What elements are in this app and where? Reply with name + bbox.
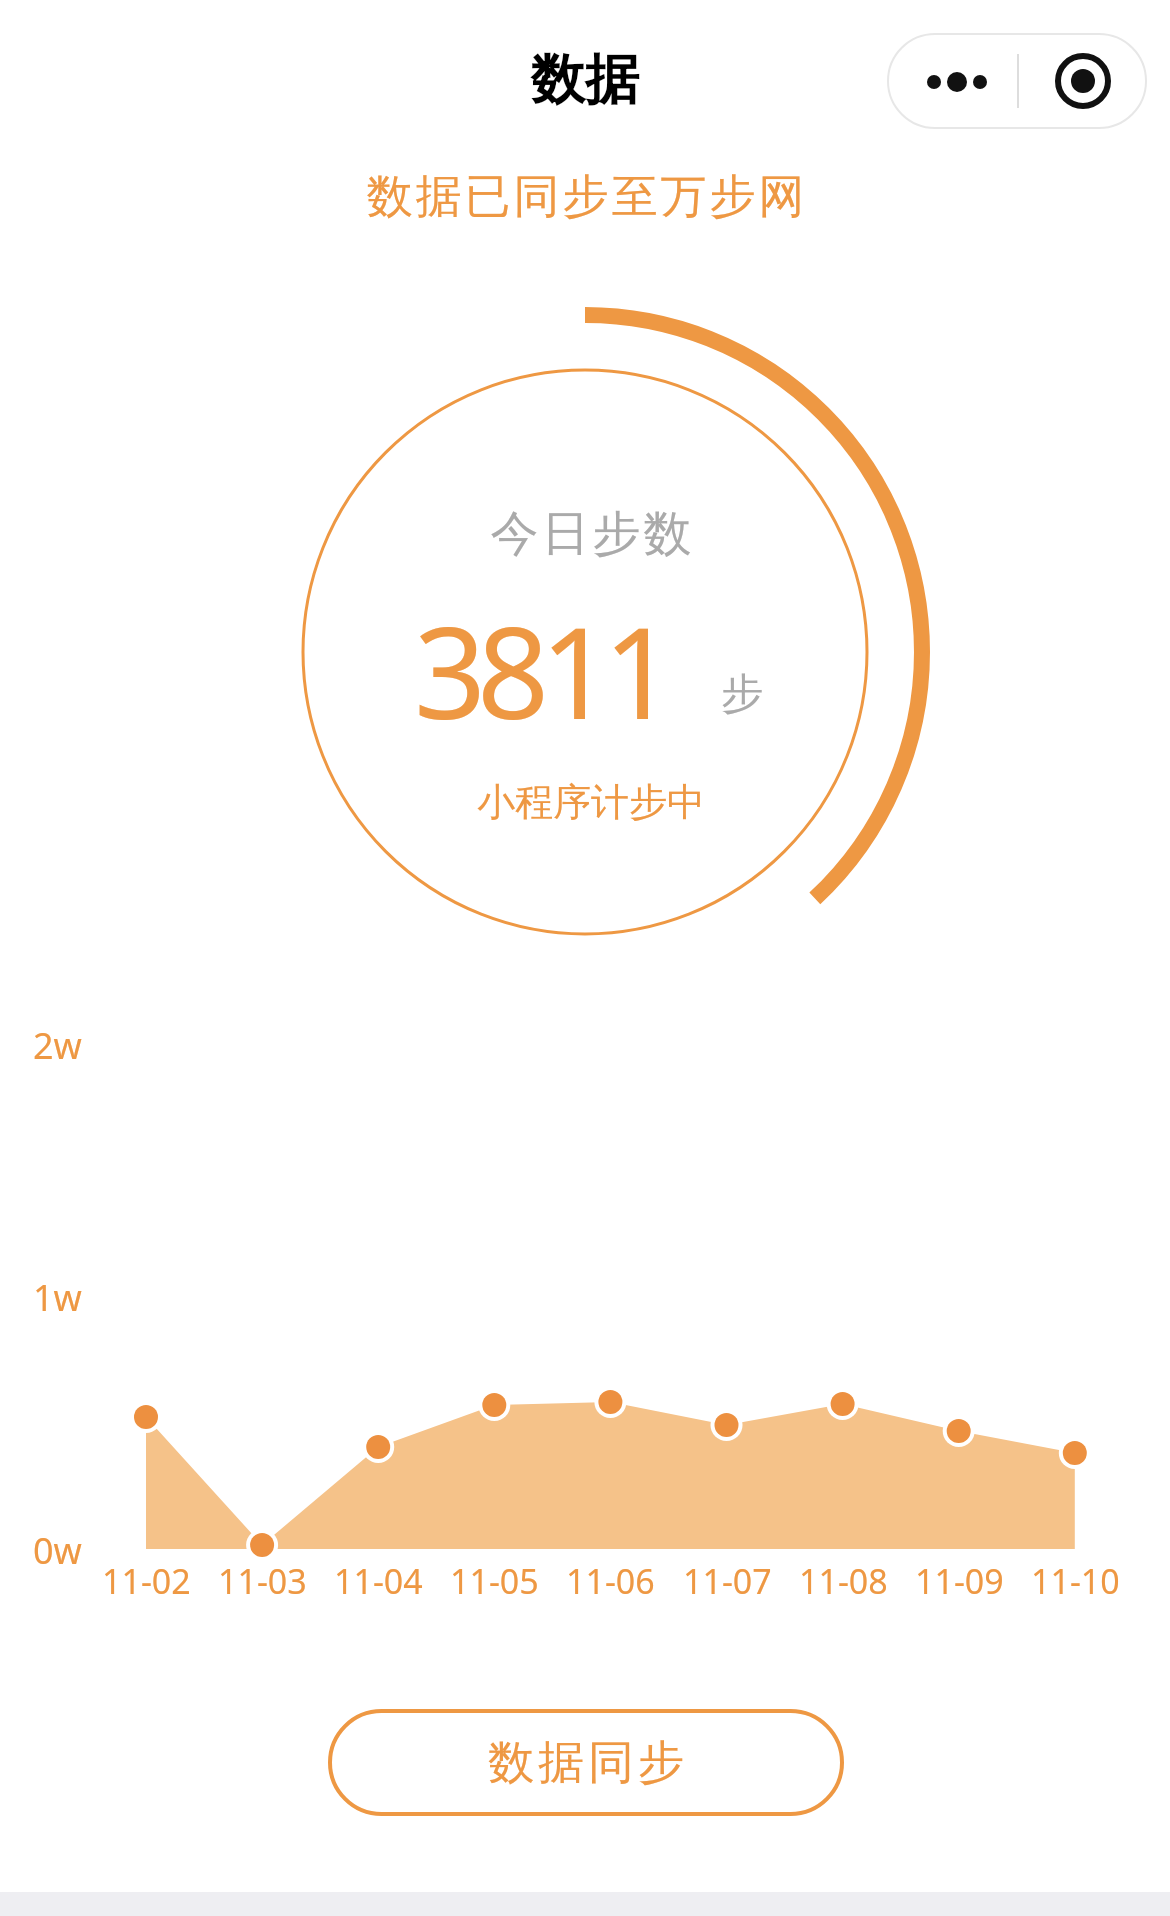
staticText: 0w <box>33 1526 82 1575</box>
staticText: 11-10 <box>1031 1558 1120 1604</box>
staticText: 步 <box>721 668 763 721</box>
staticText: 11-05 <box>450 1558 539 1604</box>
staticText: 11-03 <box>218 1558 307 1604</box>
staticText: 1w <box>33 1273 82 1322</box>
staticText: 11-08 <box>799 1558 888 1604</box>
staticText: 11-09 <box>915 1558 1004 1604</box>
staticText: 数据已同步至万步网 <box>365 168 806 226</box>
staticText: 11-07 <box>683 1558 772 1604</box>
staticText: 小程序计步中 <box>477 778 705 826</box>
button[interactable] <box>887 33 1147 129</box>
staticText: 11-04 <box>334 1558 423 1604</box>
staticText: 2w <box>33 1021 82 1070</box>
staticText: 数据 <box>531 46 639 114</box>
staticText: 数据同步 <box>486 1734 686 1792</box>
staticText: 3811 <box>414 584 667 756</box>
staticText: 11-02 <box>102 1558 191 1604</box>
staticText: 今日步数 <box>489 504 693 564</box>
button[interactable]: 数据同步 <box>328 1709 844 1816</box>
staticText: 11-06 <box>566 1558 655 1604</box>
